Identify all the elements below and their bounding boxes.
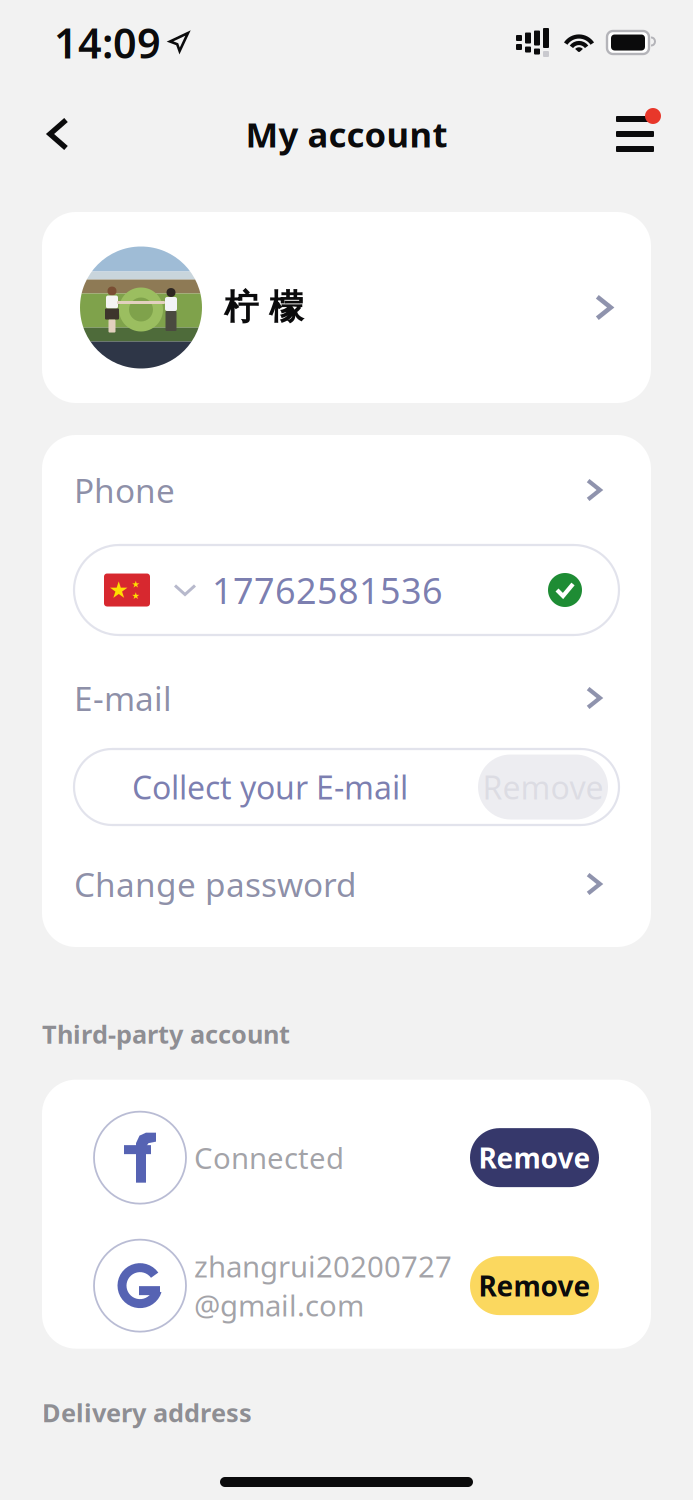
staticText: ★ (108, 577, 128, 603)
staticText: zhangrui20200727@gmail.com (194, 1247, 452, 1325)
staticText: E-mail (74, 676, 172, 720)
button[interactable]: Menu (605, 104, 665, 164)
button[interactable]: E-mail (74, 677, 602, 719)
button[interactable]: Phone (74, 469, 602, 511)
staticText: Connected (194, 1138, 344, 1177)
staticText: Remove (478, 1267, 590, 1304)
staticText: ★ (131, 590, 139, 601)
button[interactable]: Remove (470, 1128, 599, 1187)
staticText: 柠 檬 (224, 286, 304, 329)
staticText: Phone (74, 468, 175, 512)
staticText: Remove (478, 1139, 590, 1176)
button[interactable]: Remove (478, 754, 608, 819)
staticText: ★ (131, 579, 139, 589)
button[interactable]: Remove (470, 1256, 599, 1315)
button[interactable]: Back (28, 104, 88, 164)
staticText: Third-party account (42, 1017, 290, 1051)
button[interactable]: Change password (74, 863, 602, 905)
staticText: Delivery address (42, 1396, 252, 1429)
staticText: Change password (74, 862, 357, 906)
button[interactable]: 柠 檬 (42, 212, 651, 403)
staticText: Collect your E-mail (132, 766, 408, 808)
staticText: My account (245, 111, 447, 157)
staticText: 17762581536 (212, 566, 443, 614)
staticText: 14:09 (54, 15, 161, 70)
staticText: Remove (482, 766, 603, 808)
